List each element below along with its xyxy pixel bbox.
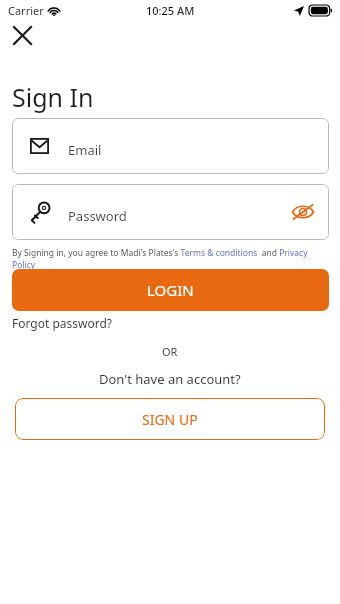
staticText: 10:25 AM	[146, 3, 195, 18]
staticText: Don't have an account?	[99, 370, 241, 388]
button[interactable]: LOGIN	[12, 269, 329, 311]
button[interactable]: Forgot password?	[12, 315, 113, 331]
button[interactable]: Email	[12, 118, 329, 174]
button[interactable]: Close	[9, 22, 36, 49]
staticText: Password	[68, 207, 127, 225]
button[interactable]: SIGN UP	[15, 398, 325, 440]
staticText: Forgot password?	[12, 315, 113, 331]
button[interactable]: Password	[12, 184, 329, 240]
staticText: OR	[162, 344, 178, 359]
staticText: Carrier	[8, 3, 44, 18]
staticText: SIGN UP	[142, 410, 198, 429]
staticText: Sign In	[12, 80, 94, 114]
staticText: By Signing in, you agree to Madi's Plate…	[12, 247, 332, 271]
button[interactable]: Show password	[287, 196, 319, 228]
staticText: Email	[68, 141, 102, 159]
staticText: LOGIN	[147, 280, 194, 300]
